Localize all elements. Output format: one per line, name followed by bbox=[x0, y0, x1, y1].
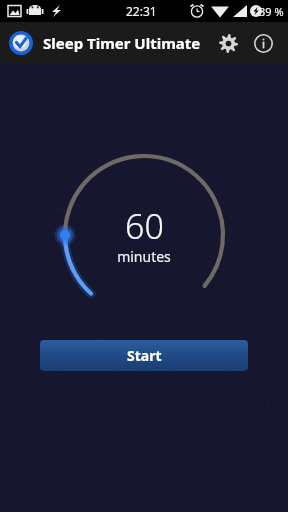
staticText: Start bbox=[127, 346, 162, 365]
staticText: minutes bbox=[117, 247, 171, 266]
button[interactable]: Info bbox=[246, 26, 280, 60]
staticText: Sleep Timer Ultimate bbox=[43, 33, 201, 53]
staticText: 39 % bbox=[259, 4, 284, 19]
staticText: 22:31 bbox=[126, 3, 157, 19]
staticText: 60 bbox=[125, 203, 164, 249]
button[interactable]: Start bbox=[40, 340, 248, 371]
button[interactable]: Settings bbox=[210, 25, 246, 61]
